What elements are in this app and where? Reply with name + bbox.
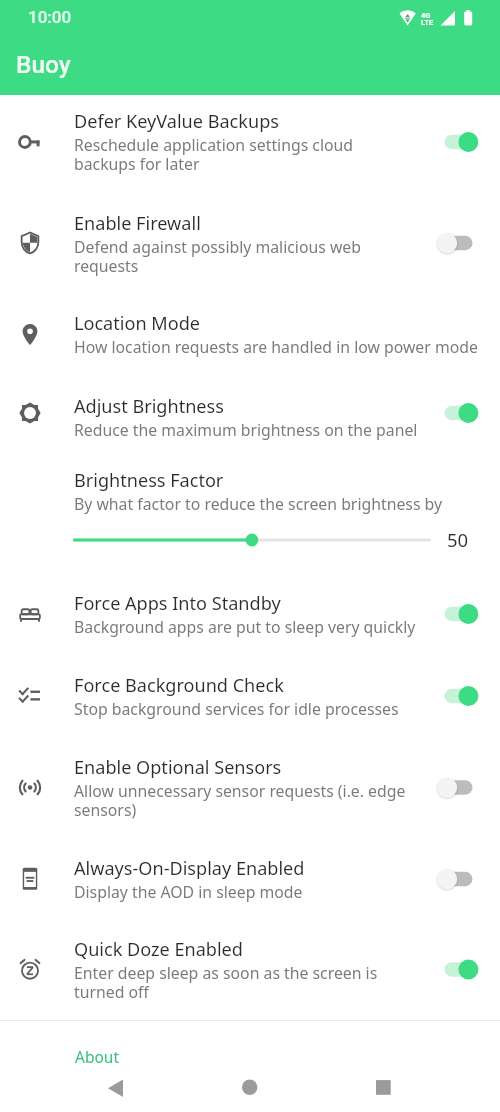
button[interactable]: Defer KeyValue Backups bbox=[0, 91, 500, 193]
staticText: About bbox=[75, 1046, 119, 1067]
button[interactable]: Adjust Brightness bbox=[435, 376, 500, 450]
staticText: Quick Doze Enabled bbox=[74, 937, 243, 962]
button[interactable]: Always-On-Display Enabled bbox=[435, 838, 500, 920]
button[interactable]: Force Apps Into Standby bbox=[0, 573, 500, 655]
staticText: Enable Optional Sensors bbox=[74, 755, 282, 780]
staticText: Force Background Check bbox=[74, 673, 284, 698]
button[interactable]: Force Apps Into Standby bbox=[435, 573, 500, 655]
staticText: Location Mode bbox=[74, 311, 200, 336]
button[interactable]: Location Mode bbox=[0, 293, 500, 376]
button[interactable]: Enable Firewall bbox=[435, 193, 500, 293]
staticText: Enable Firewall bbox=[74, 211, 201, 236]
staticText: Reschedule application settings cloud ba… bbox=[74, 134, 417, 175]
staticText: Brightness Factor bbox=[74, 468, 224, 493]
button[interactable]: Back bbox=[104, 1076, 128, 1100]
staticText: How location requests are handled in low… bbox=[74, 336, 478, 358]
staticText: Force Apps Into Standby bbox=[74, 591, 281, 616]
staticText: By what factor to reduce the screen brig… bbox=[74, 493, 443, 515]
staticText: Always-On-Display Enabled bbox=[74, 856, 305, 881]
button[interactable]: Recent apps bbox=[371, 1076, 395, 1100]
button[interactable]: Force Background Check bbox=[0, 655, 500, 737]
button[interactable]: Defer KeyValue Backups bbox=[435, 91, 500, 193]
staticText: 50 bbox=[447, 527, 469, 552]
staticText: Background apps are put to sleep very qu… bbox=[74, 616, 416, 638]
staticText: Allow unnecessary sensor requests (i.e. … bbox=[74, 780, 417, 821]
button[interactable]: Enable Optional Sensors bbox=[0, 737, 500, 838]
staticText: Defer KeyValue Backups bbox=[74, 109, 279, 134]
button[interactable]: Home bbox=[238, 1076, 262, 1100]
button[interactable]: Force Background Check bbox=[435, 655, 500, 737]
staticText: Stop background services for idle proces… bbox=[74, 698, 399, 720]
staticText: Buoy bbox=[16, 50, 71, 79]
button[interactable]: Quick Doze Enabled bbox=[435, 919, 500, 1020]
staticText: Reduce the maximum brightness on the pan… bbox=[74, 419, 418, 441]
staticText: Defend against possibly malicious web re… bbox=[74, 236, 417, 277]
button[interactable]: Brightness Factor bbox=[0, 450, 500, 573]
button[interactable]: Always-On-Display Enabled bbox=[0, 838, 500, 920]
button[interactable]: Adjust Brightness bbox=[0, 376, 500, 450]
staticText: 4G bbox=[421, 11, 431, 20]
staticText: Display the AOD in sleep mode bbox=[74, 881, 303, 903]
staticText: Adjust Brightness bbox=[74, 394, 224, 419]
staticText: LTE bbox=[421, 18, 434, 27]
staticText: 10:00 bbox=[28, 7, 72, 27]
button[interactable]: Enable Optional Sensors bbox=[435, 737, 500, 838]
button[interactable]: Enable Firewall bbox=[0, 193, 500, 293]
button[interactable]: About bbox=[0, 1028, 500, 1064]
button[interactable]: Quick Doze Enabled bbox=[0, 919, 500, 1020]
staticText: Enter deep sleep as soon as the screen i… bbox=[74, 962, 417, 1003]
